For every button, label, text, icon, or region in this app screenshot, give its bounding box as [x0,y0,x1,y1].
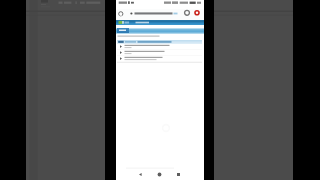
button[interactable]: Back [137,171,144,178]
button[interactable]: Home [117,10,125,18]
button[interactable] [117,28,129,33]
button[interactable] [117,44,202,50]
button[interactable]: Stop recording [193,9,202,18]
button[interactable]: Settings [183,9,191,17]
button[interactable] [117,50,202,56]
button[interactable]: Home [156,171,163,178]
button[interactable] [117,56,202,62]
button[interactable] [117,40,202,44]
button[interactable] [128,10,184,19]
button[interactable]: Recent apps [175,171,182,178]
